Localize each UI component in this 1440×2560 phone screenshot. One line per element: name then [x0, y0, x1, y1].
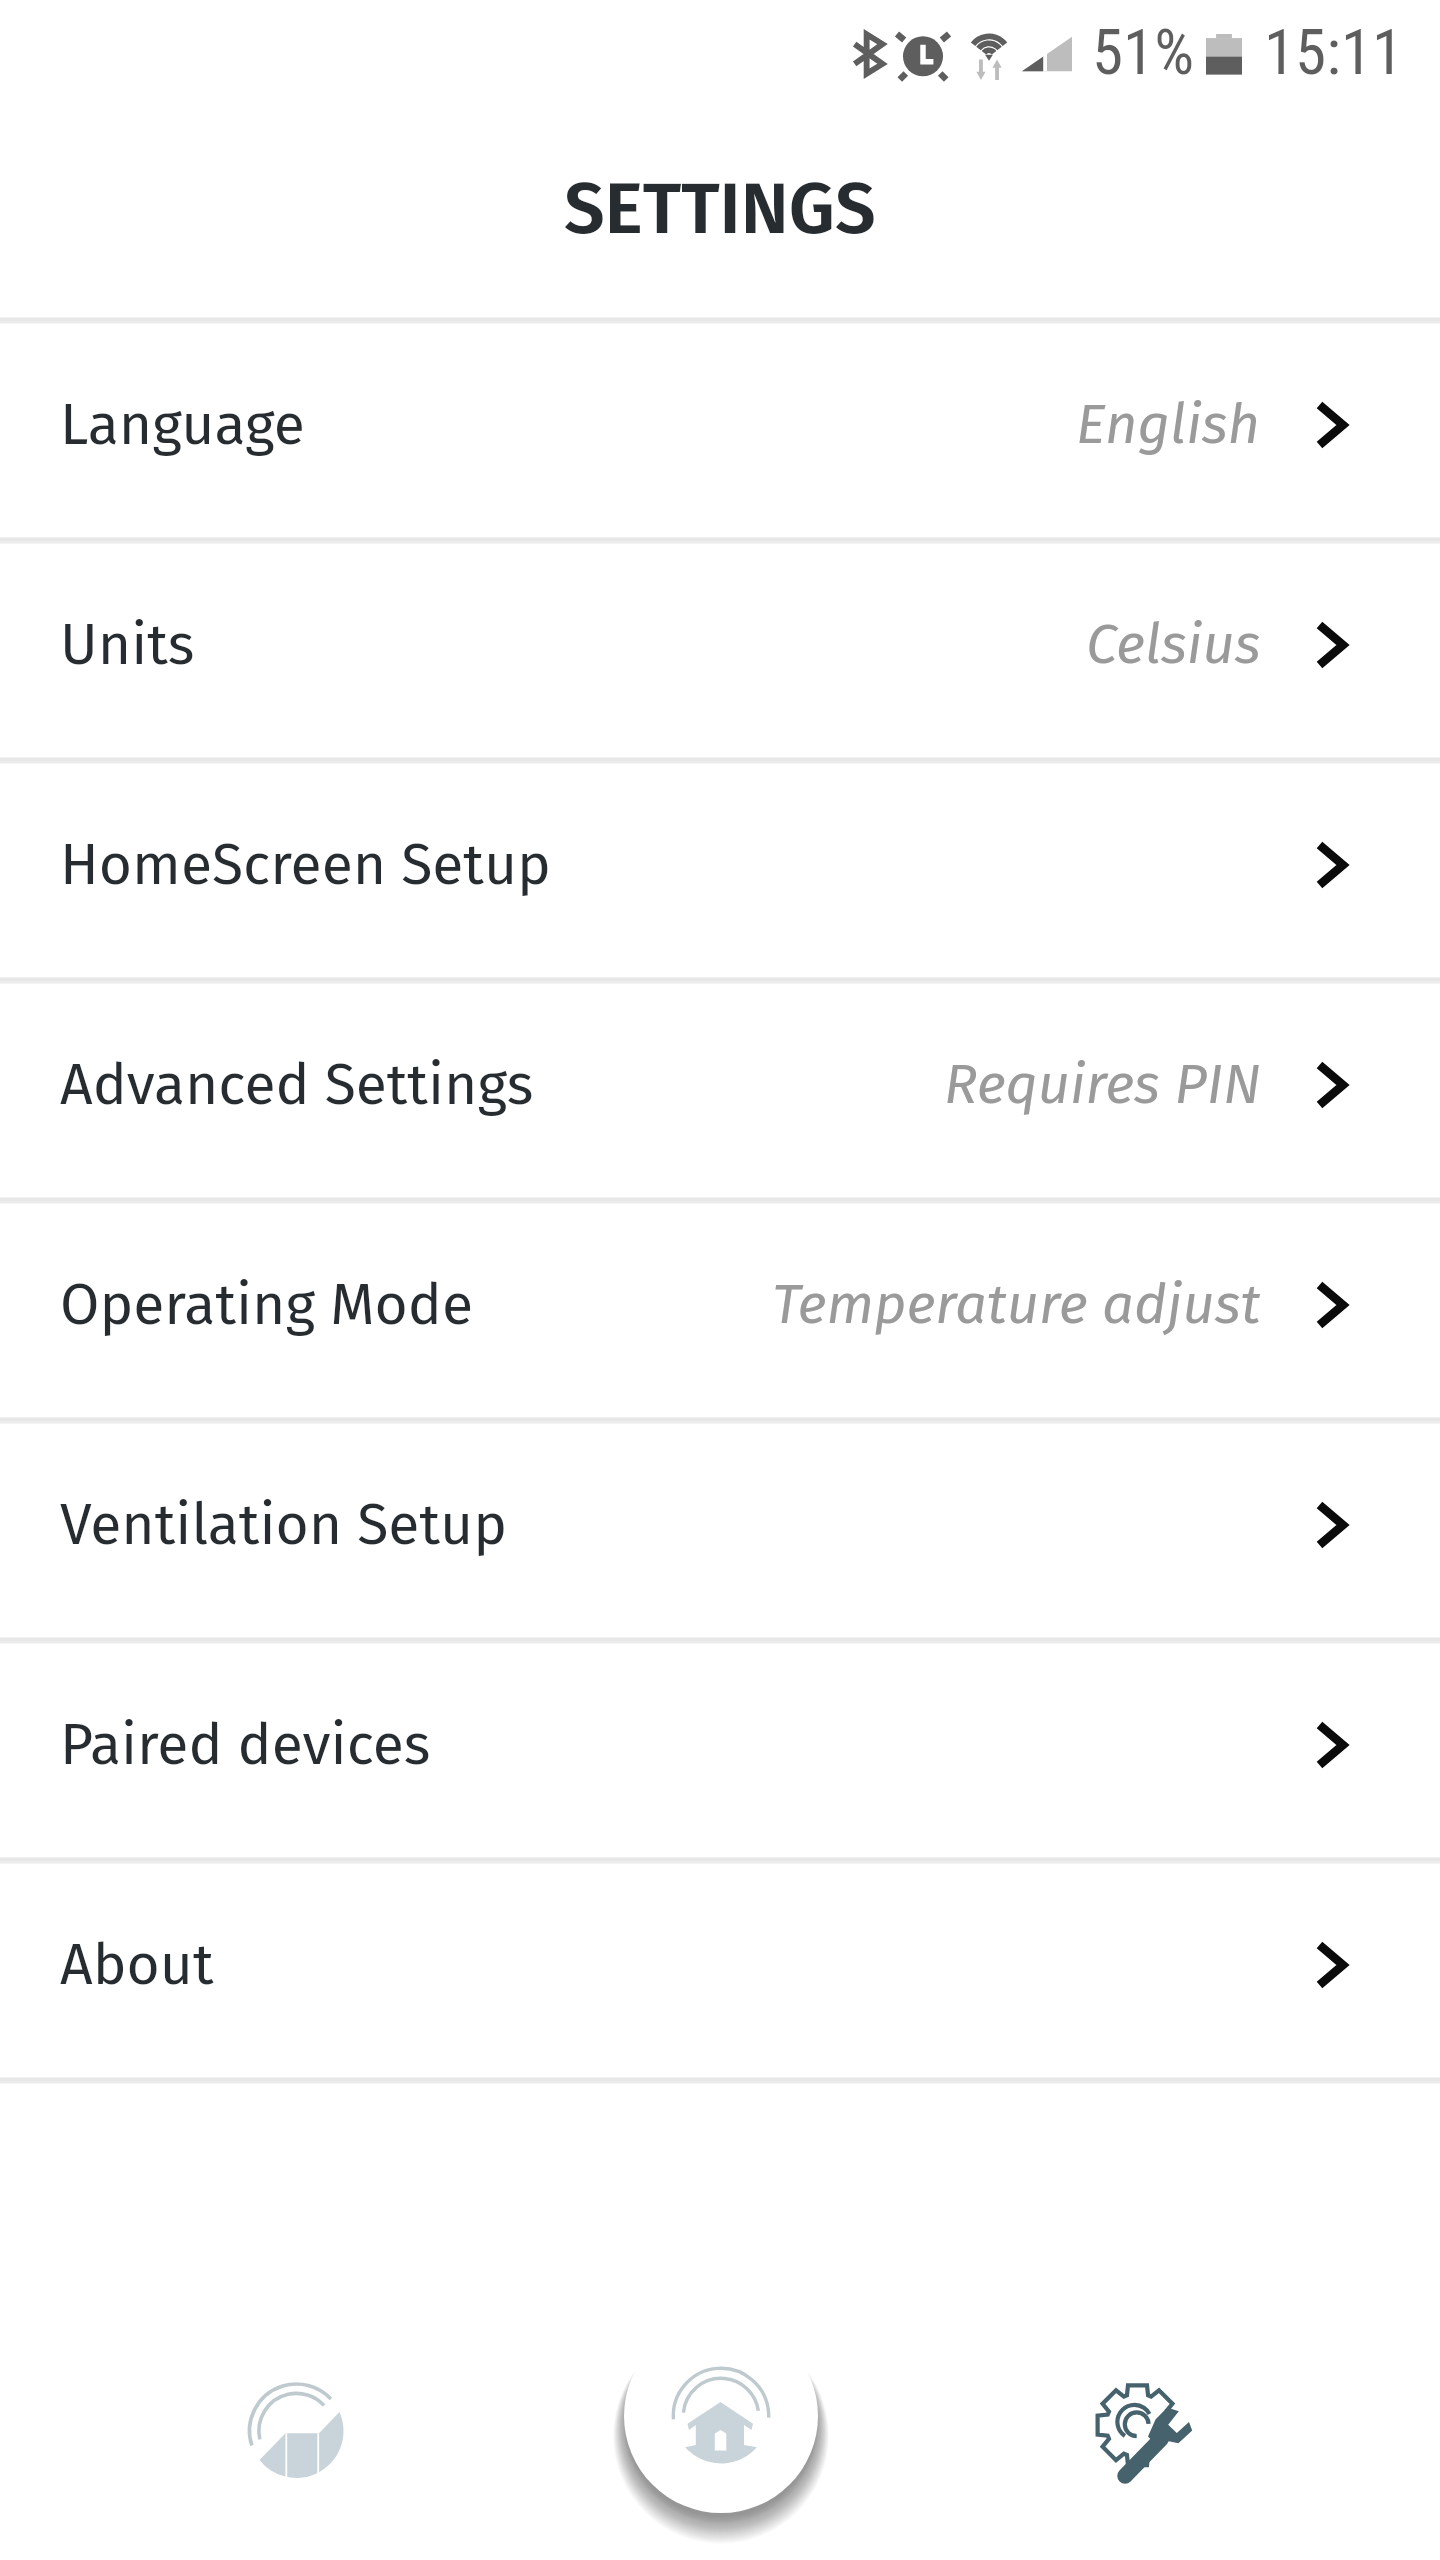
staticText: Celsius [1086, 611, 1261, 678]
staticText: 51% [1092, 16, 1195, 90]
button[interactable]: Zones [245, 2380, 348, 2483]
button[interactable]: Operating Mode [0, 1204, 1440, 1417]
staticText: Operating Mode [60, 1271, 473, 1339]
staticText: Units [60, 611, 195, 679]
staticText: Requires PIN [944, 1051, 1261, 1118]
button[interactable]: Units [0, 544, 1440, 757]
button[interactable]: Language [0, 324, 1440, 537]
staticText: SETTINGS [564, 166, 876, 252]
button[interactable]: Home [624, 2319, 818, 2513]
button[interactable]: About [0, 1864, 1440, 2077]
button[interactable]: Ventilation Setup [0, 1424, 1440, 1637]
staticText: English [1076, 391, 1261, 458]
staticText: Language [60, 391, 305, 459]
staticText: 15:11 [1264, 16, 1404, 90]
button[interactable]: Settings [1092, 2379, 1196, 2483]
button[interactable]: HomeScreen Setup [0, 764, 1440, 977]
staticText: About [60, 1931, 214, 1999]
staticText: Ventilation Setup [60, 1491, 507, 1559]
button[interactable]: Advanced Settings [0, 984, 1440, 1197]
button[interactable]: Paired devices [0, 1644, 1440, 1857]
staticText: Advanced Settings [60, 1051, 534, 1119]
staticText: Paired devices [60, 1711, 431, 1779]
staticText: HomeScreen Setup [60, 831, 551, 899]
staticText: Temperature adjust [772, 1271, 1261, 1338]
